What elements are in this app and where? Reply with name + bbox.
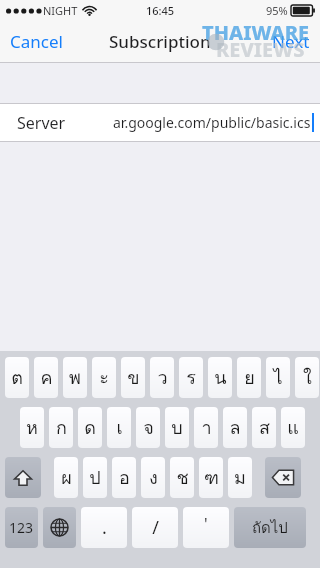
- staticText: ย: [244, 363, 255, 392]
- staticText: REVIEWS: [216, 36, 305, 63]
- button[interactable]: ถัดไป: [234, 507, 306, 548]
- staticText: ข: [127, 363, 140, 392]
- staticText: Cancel: [10, 30, 63, 53]
- staticText: ง: [149, 463, 158, 492]
- button[interactable]: เ: [107, 407, 131, 448]
- staticText: 16:45: [146, 3, 175, 18]
- staticText: ป: [89, 463, 101, 492]
- button[interactable]: 123: [5, 507, 38, 548]
- button[interactable]: ': [183, 507, 229, 548]
- staticText: Server: [17, 112, 66, 134]
- staticText: .: [102, 515, 107, 540]
- staticText: แ: [287, 413, 299, 442]
- button[interactable]: ห: [20, 407, 44, 448]
- staticText: ต: [11, 363, 23, 392]
- button[interactable]: Change keyboard: [43, 507, 76, 548]
- button[interactable]: ง: [141, 457, 165, 498]
- staticText: ar.google.com/public/basic.ics: [113, 113, 311, 132]
- button[interactable]: Next: [262, 24, 320, 59]
- staticText: น: [214, 363, 227, 392]
- staticText: า: [201, 413, 212, 442]
- staticText: 123: [9, 518, 34, 537]
- button[interactable]: ไ: [266, 357, 290, 398]
- staticText: ก: [56, 413, 67, 442]
- button[interactable]: ป: [83, 457, 107, 498]
- button[interactable]: แ: [281, 407, 305, 448]
- button[interactable]: จ: [136, 407, 160, 448]
- button[interactable]: ผ: [54, 457, 78, 498]
- button[interactable]: ก: [49, 407, 73, 448]
- staticText: ': [204, 513, 208, 535]
- staticText: ใ: [303, 363, 312, 392]
- staticText: ม: [234, 463, 246, 492]
- button[interactable]: ใ: [295, 357, 319, 398]
- staticText: 95%: [266, 3, 288, 18]
- button[interactable]: Server: [0, 104, 320, 141]
- staticText: Next: [272, 30, 310, 53]
- staticText: ะ: [99, 363, 109, 392]
- button[interactable]: า: [194, 407, 218, 448]
- button[interactable]: น: [208, 357, 232, 398]
- staticText: ถัดไป: [252, 516, 288, 540]
- button[interactable]: ฑ: [199, 457, 223, 498]
- button[interactable]: ข: [121, 357, 145, 398]
- staticText: /: [152, 515, 159, 540]
- staticText: ไ: [273, 363, 283, 392]
- staticText: ช: [176, 463, 189, 492]
- button[interactable]: ด: [78, 407, 102, 448]
- button[interactable]: Shift: [5, 457, 41, 498]
- staticText: บ: [171, 413, 183, 442]
- button[interactable]: ส: [252, 407, 276, 448]
- staticText: ผ: [61, 463, 72, 492]
- button[interactable]: /: [132, 507, 178, 548]
- button[interactable]: Cancel: [0, 24, 73, 59]
- button[interactable]: ม: [228, 457, 252, 498]
- button[interactable]: ต: [5, 357, 29, 398]
- staticText: THAIWARE: [202, 19, 310, 46]
- button[interactable]: ะ: [92, 357, 116, 398]
- button[interactable]: ล: [223, 407, 247, 448]
- staticText: ล: [229, 413, 241, 442]
- button[interactable]: ว: [150, 357, 174, 398]
- button[interactable]: ร: [179, 357, 203, 398]
- staticText: พ: [69, 363, 81, 392]
- button[interactable]: .: [81, 507, 127, 548]
- staticText: ส: [259, 413, 270, 442]
- staticText: เ: [116, 413, 123, 442]
- staticText: Subscription: [109, 30, 211, 53]
- staticText: ด: [84, 413, 96, 442]
- staticText: ค: [40, 363, 53, 392]
- staticText: จ: [143, 413, 154, 442]
- button[interactable]: Backspace: [265, 457, 301, 498]
- staticText: ห: [26, 413, 38, 442]
- staticText: ว: [157, 363, 168, 392]
- staticText: ฑ: [204, 463, 219, 492]
- button[interactable]: ค: [34, 357, 58, 398]
- button[interactable]: ย: [237, 357, 261, 398]
- button[interactable]: ช: [170, 457, 194, 498]
- button[interactable]: พ: [63, 357, 87, 398]
- button[interactable]: บ: [165, 407, 189, 448]
- staticText: อ: [119, 463, 130, 492]
- staticText: ร: [186, 363, 196, 392]
- button[interactable]: อ: [112, 457, 136, 498]
- staticText: NIGHT: [43, 3, 78, 18]
